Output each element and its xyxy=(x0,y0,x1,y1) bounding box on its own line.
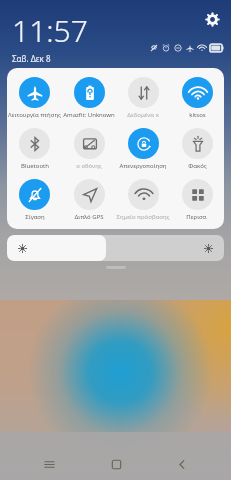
staticText: Bluetooth xyxy=(21,162,49,170)
button[interactable]: Settings xyxy=(202,9,222,29)
staticText: kitsos xyxy=(189,111,206,119)
staticText: Φακός xyxy=(188,162,207,170)
staticText: Διπλό GPS xyxy=(74,213,104,221)
staticText: Δεδομένα κ xyxy=(127,111,159,119)
button[interactable]: Recents xyxy=(32,448,66,480)
button[interactable]: Φακός xyxy=(170,127,224,171)
button[interactable]: Home xyxy=(99,448,133,480)
button[interactable]: Brightness xyxy=(7,235,224,261)
button[interactable]: ο οθόνης xyxy=(62,127,116,171)
staticText: Σημείο πρόσβασης xyxy=(116,213,170,221)
staticText: Περισσ. xyxy=(186,213,208,221)
staticText: Σίγαση xyxy=(25,213,45,221)
button[interactable]: Λειτουργία πτήσης xyxy=(7,76,62,120)
button[interactable]: Διπλό GPS xyxy=(62,178,116,222)
staticText: Σαβ, Δεκ 8 xyxy=(12,53,51,62)
staticText: Λειτουργία πτήσης xyxy=(8,111,61,119)
button[interactable]: Δεδομένα κ xyxy=(116,76,170,120)
staticText: Απενεργοποίηση xyxy=(119,162,167,170)
button[interactable]: Περισσ. xyxy=(170,178,224,222)
button[interactable]: Back xyxy=(165,448,199,480)
button[interactable]: Amazfit: Unknown xyxy=(62,76,116,120)
button[interactable]: kitsos xyxy=(170,76,224,120)
staticText: ο οθόνης xyxy=(76,162,102,170)
button[interactable]: Σίγαση xyxy=(7,178,62,222)
button[interactable]: Απενεργοποίηση xyxy=(116,127,170,171)
button[interactable]: Σημείο πρόσβασης xyxy=(116,178,170,222)
staticText: Amazfit: Unknown xyxy=(63,111,115,119)
staticText: 11:57 xyxy=(12,10,88,51)
button[interactable]: Bluetooth xyxy=(7,127,62,171)
